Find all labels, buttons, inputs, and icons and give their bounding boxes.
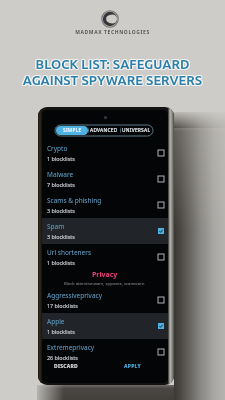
staticText: 3 blocklists (47, 233, 75, 240)
staticText: Scams & phishing (47, 196, 102, 205)
staticText: 26 blocklists (47, 354, 78, 361)
button[interactable]: Disabled (158, 254, 164, 260)
staticText: SIMPLE (63, 127, 82, 134)
staticText: Aggressiveprivacy (47, 291, 102, 300)
staticText: Apple (47, 317, 65, 326)
button[interactable]: Apple (42, 313, 168, 339)
staticText: Spam (47, 222, 65, 231)
staticText: 1 blocklists (47, 155, 75, 162)
staticText: BLOCK LIST: SAFEGUARD AGAINST SPYWARE SE… (1, 57, 225, 87)
staticText: 1 blocklists (47, 328, 75, 335)
staticText: DISCARD (54, 363, 79, 370)
button[interactable]: Disabled (158, 297, 164, 303)
staticText: APPLY (124, 363, 141, 370)
staticText: BLOCK LIST: SAFEGUARD AGAINST SPYWARE SE… (1, 56, 225, 86)
staticText: Extremeprivacy (47, 343, 95, 352)
staticText: BLOCK LIST: SAFEGUARD AGAINST SPYWARE SE… (0, 56, 225, 86)
button[interactable]: Disabled (158, 150, 164, 156)
staticText: BLOCK LIST: SAFEGUARD AGAINST SPYWARE SE… (0, 56, 224, 86)
button[interactable]: Url shorteners (42, 244, 168, 270)
staticText: Malware (47, 170, 74, 179)
button[interactable]: SIMPLE (56, 126, 88, 135)
staticText: BLOCK LIST: SAFEGUARD AGAINST SPYWARE SE… (1, 58, 225, 88)
staticText: BLOCK LIST: SAFEGUARD AGAINST SPYWARE SE… (0, 57, 224, 87)
button[interactable]: Aggressiveprivacy (42, 287, 168, 313)
button[interactable]: ADVANCED (88, 126, 120, 135)
button[interactable]: Scams & phishing (42, 192, 168, 218)
button[interactable]: Disabled (158, 202, 164, 208)
staticText: ADVANCED (90, 127, 118, 134)
staticText: Privacy (92, 270, 118, 280)
staticText: 17 blocklists (47, 302, 78, 309)
button[interactable]: Malware (42, 166, 168, 192)
button[interactable]: Crypto (42, 140, 168, 166)
button[interactable]: APPLY (117, 359, 148, 373)
other: MadMax Technologies logo (101, 10, 119, 28)
staticText: 3 blocklists (47, 207, 75, 214)
staticText: Url shorteners (47, 248, 92, 257)
button[interactable]: Spam (42, 218, 168, 244)
staticText: BLOCK LIST: SAFEGUARD AGAINST SPYWARE SE… (0, 57, 225, 87)
staticText: MADMAX TECHNOLOGIES (0, 29, 225, 36)
button[interactable]: Extremeprivacy (42, 339, 168, 365)
button[interactable]: UNIVERSAL (120, 126, 152, 135)
staticText: Block attentionware, spyware, scareware. (64, 281, 146, 287)
button[interactable]: Enabled (158, 323, 164, 329)
button[interactable]: Disabled (158, 176, 164, 182)
button[interactable]: Enabled (158, 228, 164, 234)
staticText: Crypto (47, 144, 68, 153)
staticText: 1 blocklists (47, 259, 75, 266)
staticText: 7 blocklists (47, 181, 75, 188)
button[interactable]: Disabled (158, 349, 164, 355)
staticText: BLOCK LIST: SAFEGUARD AGAINST SPYWARE SE… (0, 58, 224, 88)
staticText: UNIVERSAL (122, 127, 151, 134)
button[interactable]: DISCARD (51, 359, 82, 373)
staticText: BLOCK LIST: SAFEGUARD AGAINST SPYWARE SE… (0, 58, 225, 88)
